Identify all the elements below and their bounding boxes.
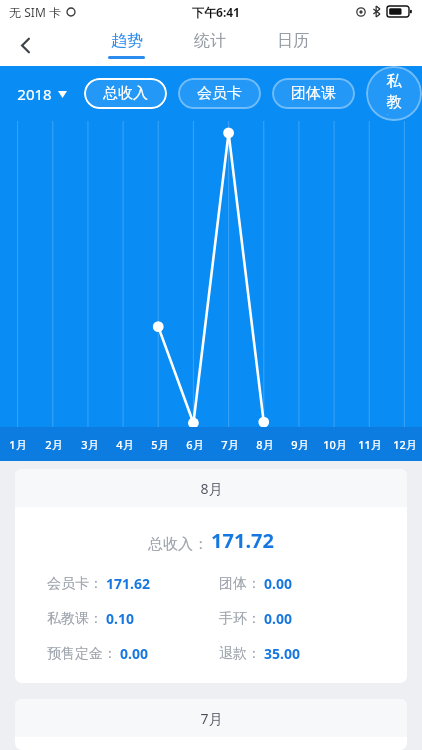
- staticText: 0.10: [106, 609, 134, 628]
- staticText: 7月: [221, 437, 239, 452]
- staticText: 趋势: [111, 31, 143, 51]
- button[interactable]: 会员卡: [178, 78, 261, 109]
- staticText: 无 SIM 卡: [9, 4, 61, 20]
- staticText: 1月: [9, 437, 27, 452]
- staticText: 35.00: [264, 644, 300, 663]
- staticText: 171.62: [106, 574, 150, 593]
- staticText: 手环：: [219, 610, 261, 628]
- staticText: 0.00: [264, 574, 292, 593]
- staticText: 私教课: [385, 72, 403, 115]
- button[interactable]: 7月: [15, 699, 407, 750]
- button[interactable]: 趋势: [105, 29, 148, 61]
- staticText: 2018: [17, 84, 52, 104]
- staticText: 4月: [116, 437, 134, 452]
- staticText: 11月: [358, 437, 382, 452]
- staticText: 会员卡: [197, 84, 242, 103]
- staticText: 统计: [194, 31, 226, 51]
- staticText: 9月: [291, 437, 309, 452]
- button[interactable]: 8月: [15, 469, 407, 683]
- staticText: 日历: [277, 31, 309, 51]
- button[interactable]: 私教课: [366, 66, 422, 121]
- staticText: 退款：: [219, 645, 261, 663]
- staticText: 171.72: [211, 527, 274, 554]
- staticText: 12月: [393, 437, 417, 452]
- staticText: 10月: [323, 437, 347, 452]
- staticText: 8月: [256, 437, 274, 452]
- staticText: 团体课: [291, 84, 336, 103]
- staticText: 5月: [151, 437, 169, 452]
- staticText: 3月: [81, 437, 99, 452]
- staticText: 2月: [45, 437, 63, 452]
- staticText: 0.00: [120, 644, 148, 663]
- button[interactable]: 总收入: [84, 78, 167, 109]
- button[interactable]: 统计: [188, 29, 231, 61]
- staticText: 总收入: [103, 84, 148, 103]
- staticText: 6月: [186, 437, 204, 452]
- staticText: 团体：: [219, 575, 261, 593]
- staticText: 8月: [200, 479, 223, 498]
- staticText: 下午6:41: [192, 4, 240, 20]
- staticText: 会员卡：: [47, 575, 103, 593]
- staticText: 预售定金：: [47, 645, 117, 663]
- staticText: 私教课：: [47, 610, 103, 628]
- staticText: 总收入：: [148, 535, 208, 554]
- staticText: 7月: [200, 709, 223, 728]
- button[interactable]: 日历: [271, 29, 314, 61]
- button[interactable]: Back: [4, 24, 46, 66]
- staticText: 0.00: [264, 609, 292, 628]
- button[interactable]: 团体课: [272, 78, 355, 109]
- button[interactable]: 2018: [17, 78, 67, 110]
